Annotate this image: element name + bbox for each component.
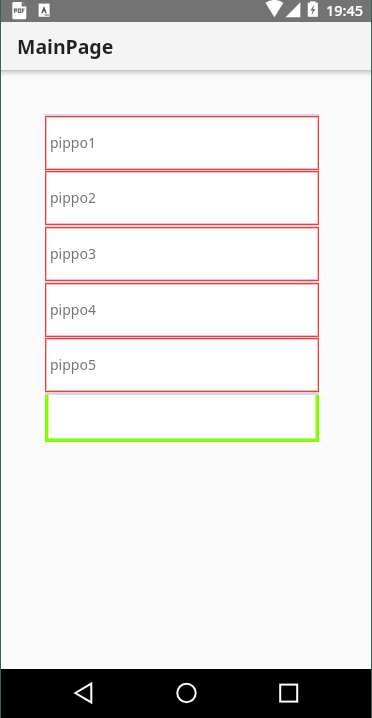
button[interactable]	[45, 391, 319, 442]
staticText: pippo3	[50, 244, 96, 263]
button[interactable]: Home	[124, 669, 248, 718]
button[interactable]: pippo5	[45, 338, 319, 392]
button[interactable]: Recent apps	[248, 669, 372, 718]
staticText: pippo2	[50, 188, 96, 207]
staticText: pippo5	[50, 355, 96, 374]
button[interactable]: pippo1	[45, 116, 319, 170]
button[interactable]: pippo4	[45, 283, 319, 337]
staticText: 19:45	[326, 0, 364, 20]
button[interactable]: Back	[0, 669, 124, 718]
staticText: MainPage	[17, 33, 114, 60]
staticText: pippo4	[50, 300, 96, 319]
staticText: pippo1	[50, 133, 96, 152]
button[interactable]: pippo3	[45, 227, 319, 281]
button[interactable]: pippo2	[45, 171, 319, 225]
